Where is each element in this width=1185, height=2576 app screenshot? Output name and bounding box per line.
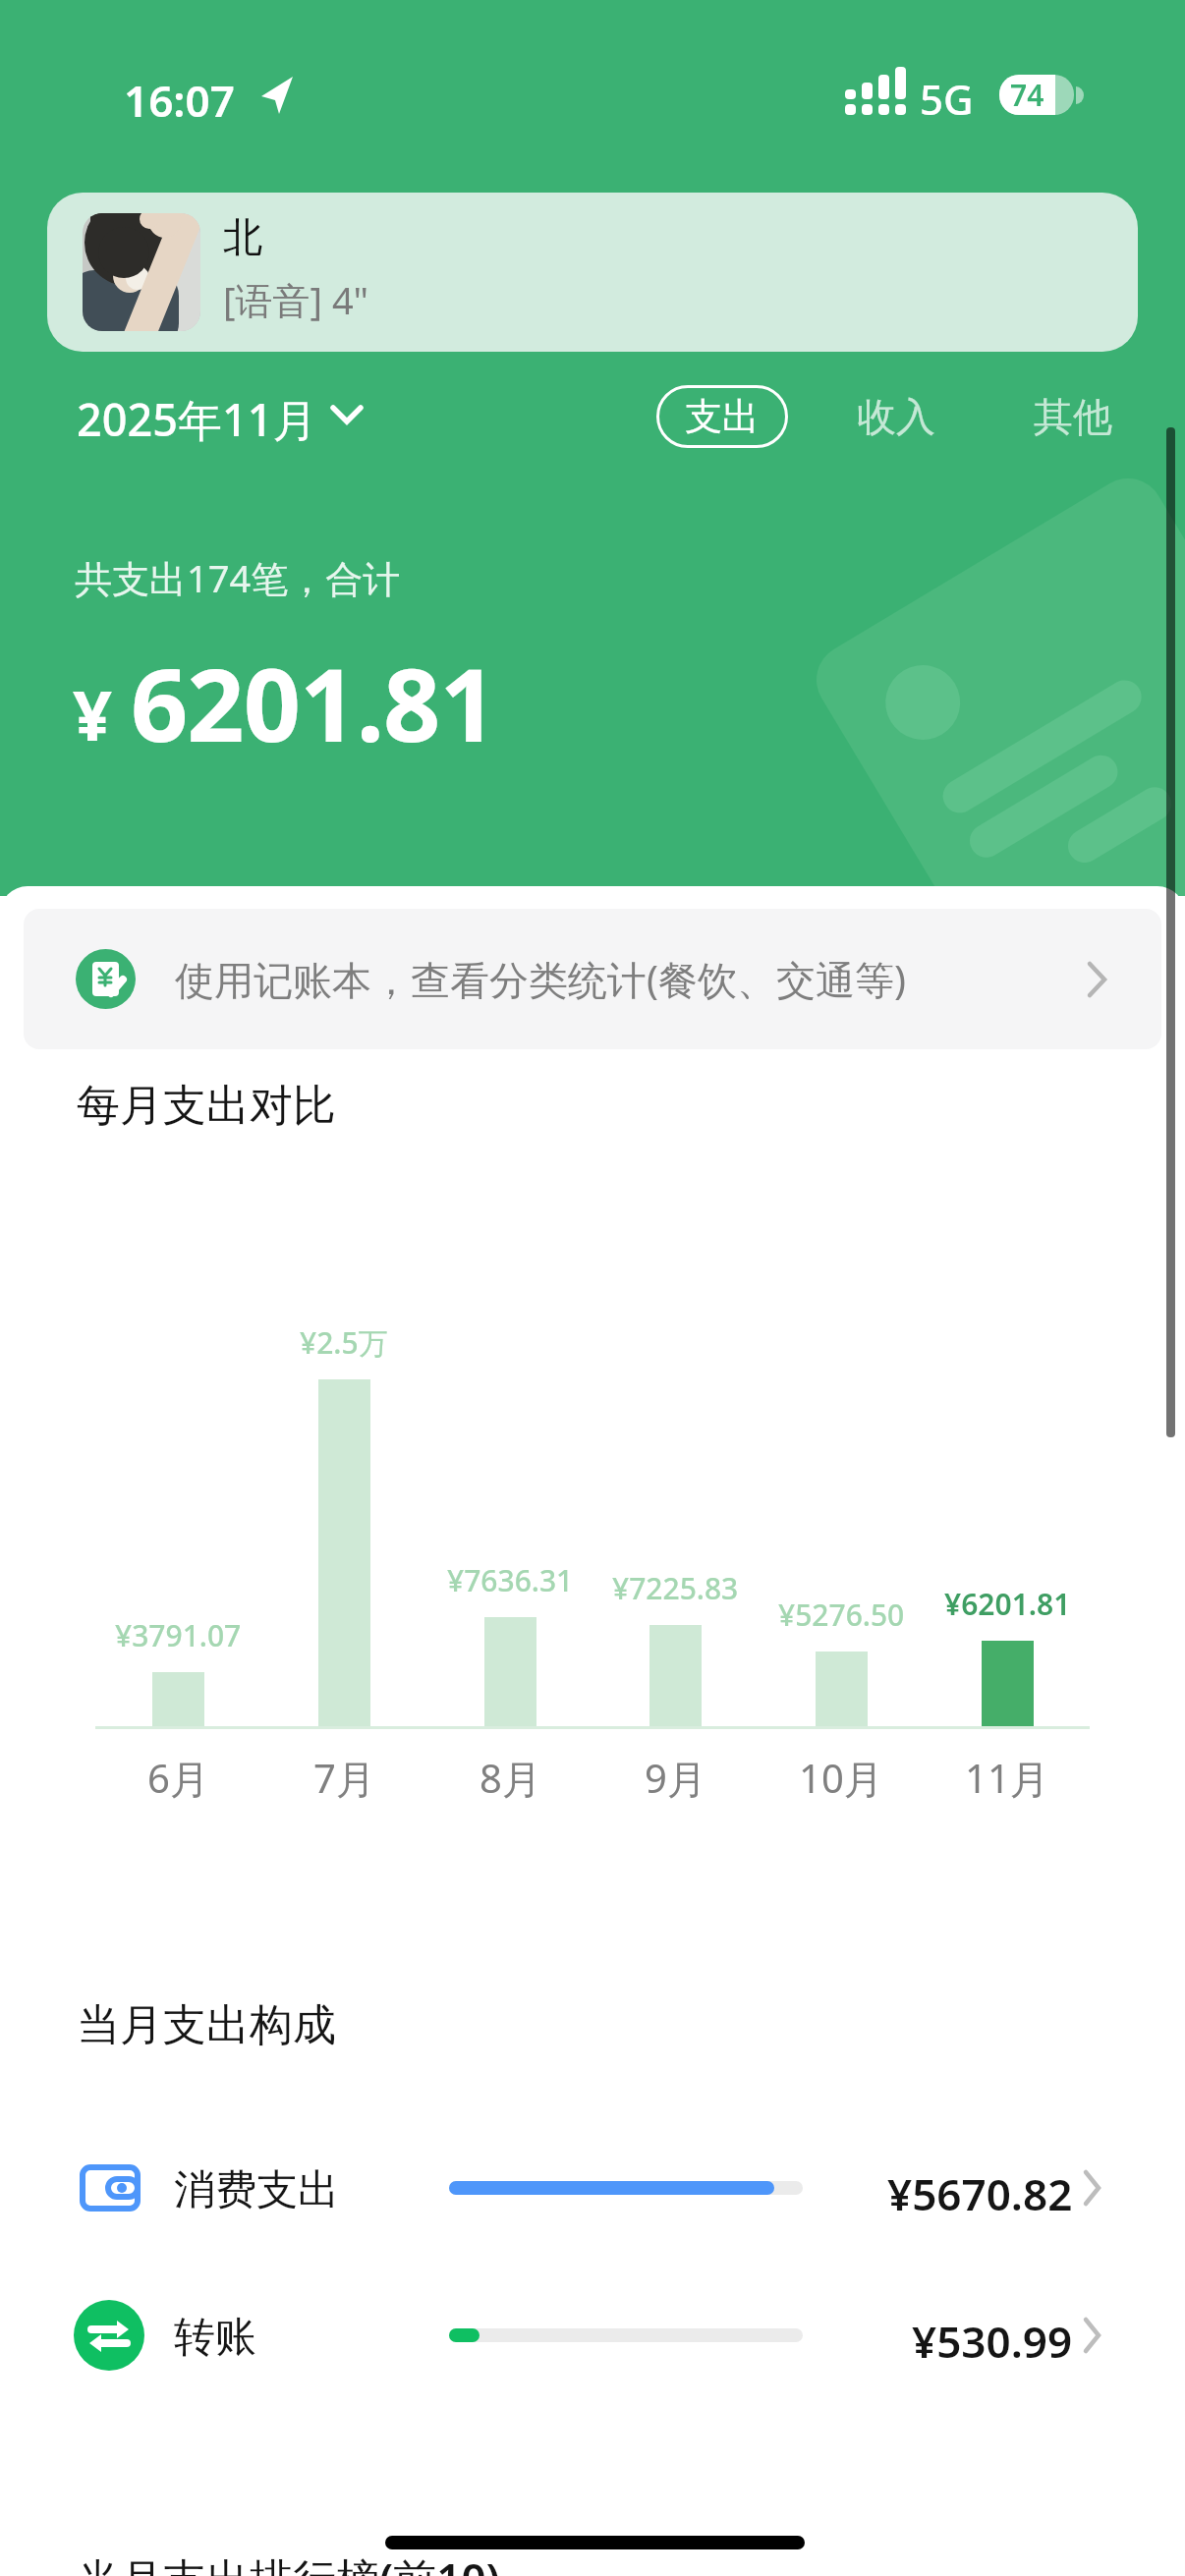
staticText: 8月 [480,1751,541,1800]
staticText: ¥6201.81 [944,1584,1071,1619]
staticText: 7月 [313,1751,375,1800]
staticText: ¥ [73,667,113,760]
staticText: 2025年11月 [77,389,317,442]
staticText: 9月 [645,1751,706,1800]
staticText: 5G [920,71,974,120]
staticText: ¥7225.83 [612,1568,739,1603]
staticText: 使用记账本，查看分类统计(餐饮、交通等) [175,952,906,1006]
staticText: 16:07 [124,71,235,120]
staticText: 其他 [1034,392,1112,441]
staticText: 11月 [965,1751,1049,1800]
button[interactable]: 消费支出 [0,2138,1185,2246]
button[interactable]: 支出 [656,385,788,448]
staticText: ¥5670.82 [887,2164,1073,2212]
staticText: 74 [1010,75,1044,115]
staticText: 当月支出排行榜(前10) [77,2548,500,2576]
staticText: 当月支出构成 [77,1998,336,2049]
button[interactable]: 使用记账本，查看分类统计(餐饮、交通等) [24,909,1161,1049]
staticText: 共支出174笔，合计 [75,552,401,603]
staticText: 6201.81 [131,635,496,760]
staticText: ¥5276.50 [778,1595,905,1630]
staticText: 每月支出对比 [77,1079,336,1130]
staticText: 消费支出 [174,2164,339,2212]
staticText: ¥530.99 [912,2312,1073,2359]
staticText: 北 [223,212,262,261]
staticText: ¥2.5万 [300,1322,388,1358]
button[interactable]: 转账 [0,2281,1185,2389]
staticText: 收入 [857,392,935,441]
staticText: ¥3791.07 [115,1615,242,1651]
button[interactable]: 2025年11月 [77,389,363,442]
staticText: 10月 [799,1751,883,1800]
button[interactable]: 北 [47,193,1138,352]
staticText: 支出 [685,393,760,440]
staticText: 6月 [147,1751,209,1800]
button[interactable]: 其他 [1014,385,1132,448]
button[interactable]: 收入 [837,385,955,448]
staticText: [语音] 4" [223,274,369,323]
staticText: ¥7636.31 [447,1560,574,1596]
staticText: 转账 [174,2312,256,2359]
